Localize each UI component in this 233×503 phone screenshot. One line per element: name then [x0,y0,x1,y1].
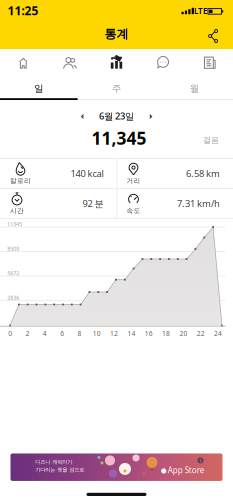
staticText: 92 분 [82,197,103,210]
staticText: 0 [8,329,12,338]
staticText: 6.58 km [186,167,220,180]
staticText: 5672 [7,270,19,277]
staticText: 16 [145,329,153,338]
staticText: 6월 23일 [99,110,134,122]
staticText: 월 [190,83,199,94]
button[interactable]: 광고 [10,453,222,481]
staticText: 디즈니 캐릭터가 [35,459,72,465]
staticText: 일 [34,83,43,94]
staticText: 거리 [126,177,140,185]
staticText: 11345 [7,221,22,228]
button[interactable]: 뉴스 [190,49,230,75]
staticText: 통계 [104,27,128,41]
staticText: i [200,457,201,464]
staticText: 20 [179,329,187,338]
staticText: 주 [112,83,121,94]
staticText: 속도 [126,207,140,215]
button[interactable]: 채팅 [143,49,183,75]
staticText: 걸음 [203,135,219,145]
staticText: 8 [77,329,81,338]
staticText: 11:25 [7,2,38,18]
staticText: 시간 [10,207,24,215]
button[interactable]: 주 [78,78,155,99]
staticText: 7.31 km/h [177,197,220,210]
button[interactable]: Share [201,24,225,48]
button[interactable]: 월 [155,78,233,99]
button[interactable]: 홈 [3,49,43,75]
staticText: 기다리는 펫을 섬으로 [35,466,84,473]
staticText: 140 kcal [70,167,103,180]
staticText: 2 [25,329,29,338]
button[interactable]: 친구 [50,49,90,75]
staticText: 8509 [7,245,19,252]
staticText: 22 [197,329,205,338]
staticText: 11,345 [91,126,146,149]
staticText: 2836 [7,294,19,301]
staticText: 칼로리 [10,177,31,185]
staticText: 4 [43,329,47,338]
button[interactable]: 일 [0,78,78,99]
staticText: 10 [93,329,101,338]
staticText: App Store [168,465,205,475]
staticText: 24 [214,329,222,338]
staticText: 12 [110,329,118,338]
staticText: 6 [60,329,64,338]
staticText: 14 [127,329,135,338]
button[interactable]: 통계 [96,49,136,75]
staticText: LTE [194,6,207,16]
button[interactable]: 다음 날짜 [144,110,158,123]
button[interactable]: 이전 날짜 [75,110,89,123]
staticText: 18 [162,329,170,338]
